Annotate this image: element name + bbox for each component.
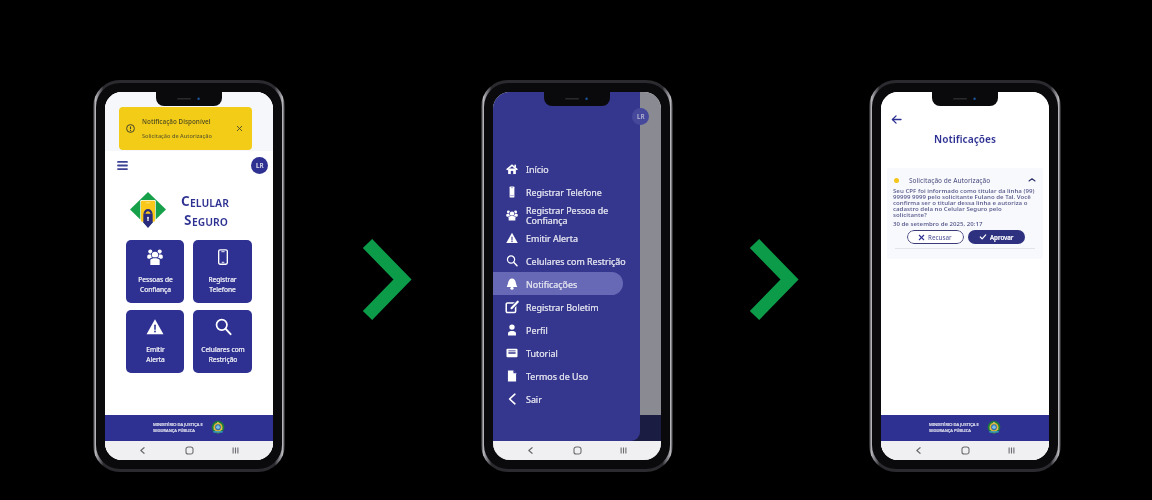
button[interactable]: Menu	[118, 156, 136, 174]
button[interactable]: Celulares com Restrição	[193, 310, 252, 373]
staticText: Registrar Telefone	[526, 186, 602, 198]
staticText: Registrar Boletim	[526, 301, 599, 313]
button[interactable]: Início	[957, 442, 974, 459]
staticText: Notificação Disponível	[142, 117, 211, 126]
button[interactable]: Termos de Uso	[493, 364, 640, 387]
staticText: Recusar	[928, 233, 952, 241]
button[interactable]: Emitir Alerta	[126, 310, 184, 373]
staticText: Emitir Alerta	[526, 232, 578, 244]
staticText: SEGURANÇA PÚBLICA	[153, 428, 195, 434]
staticText: Solicitação de Autorização	[142, 132, 212, 140]
button[interactable]: Recentes	[227, 442, 244, 459]
button[interactable]: Voltar	[887, 110, 905, 128]
staticText: LR	[256, 161, 264, 170]
staticText: 30 de setembro de 2025, 20:17	[893, 219, 983, 227]
button[interactable]: Início	[493, 157, 640, 180]
button[interactable]: Notificações	[493, 272, 640, 295]
button[interactable]: Início	[181, 442, 198, 459]
button[interactable]: Recentes	[1003, 442, 1020, 459]
staticText: Notificações	[934, 132, 997, 146]
button[interactable]: Fechar	[234, 123, 245, 134]
button[interactable]: Celulares com Restrição	[493, 249, 640, 272]
button[interactable]: Recolher	[1027, 175, 1037, 185]
button[interactable]: Início	[569, 442, 586, 459]
button[interactable]: Pessoas de Confiança	[126, 240, 184, 303]
staticText: ELULAR	[190, 196, 229, 210]
button[interactable]: Registrar Telefone	[493, 180, 640, 203]
staticText: Celulares com Restrição	[201, 345, 245, 363]
staticText: EGURO	[192, 215, 229, 229]
staticText: Pessoas de Confiança	[138, 275, 173, 293]
staticText: Aprovar	[990, 233, 1014, 241]
button[interactable]: LR	[251, 157, 268, 174]
button[interactable]: LR	[632, 108, 649, 125]
staticText: MINISTÉRIO DA JUSTIÇA E	[929, 422, 979, 428]
staticText: Sair	[526, 393, 542, 405]
staticText: C	[181, 191, 190, 210]
button[interactable]: Voltar	[910, 442, 927, 459]
staticText: Emitir Alerta	[146, 345, 165, 363]
button[interactable]: Sair	[493, 387, 640, 410]
button[interactable]: Recusar	[907, 230, 964, 244]
staticText: Notificações	[526, 278, 578, 290]
staticText: Solicitação de Autorização	[909, 176, 991, 185]
button[interactable]: Perfil	[493, 318, 640, 341]
button[interactable]: Registrar Pessoa de Confiança	[493, 203, 640, 226]
button[interactable]: Notificação Disponível	[119, 107, 252, 150]
staticText: MINISTÉRIO DA JUSTIÇA E	[153, 422, 203, 428]
staticText: Início	[526, 163, 549, 175]
button[interactable]: Registrar Telefone	[193, 240, 252, 303]
staticText: Termos de Uso	[526, 370, 589, 382]
staticText: Tutorial	[526, 347, 558, 359]
button[interactable]: Voltar	[522, 442, 539, 459]
staticText: LR	[637, 112, 645, 121]
staticText: S	[184, 210, 192, 229]
staticText: Registrar Pessoa de Confiança	[526, 204, 609, 226]
button[interactable]: Aprovar	[968, 230, 1025, 244]
button[interactable]: Registrar Boletim	[493, 295, 640, 318]
button[interactable]: Recentes	[615, 442, 632, 459]
staticText: Registrar Telefone	[208, 275, 237, 293]
button[interactable]: Emitir Alerta	[493, 226, 640, 249]
button[interactable]: Voltar	[134, 442, 151, 459]
staticText: SEGURANÇA PÚBLICA	[929, 428, 971, 434]
staticText: Seu CPF foi informado como titular da li…	[893, 186, 1037, 219]
staticText: Perfil	[526, 324, 548, 336]
staticText: Celulares com Restrição	[526, 255, 626, 267]
button[interactable]: Tutorial	[493, 341, 640, 364]
